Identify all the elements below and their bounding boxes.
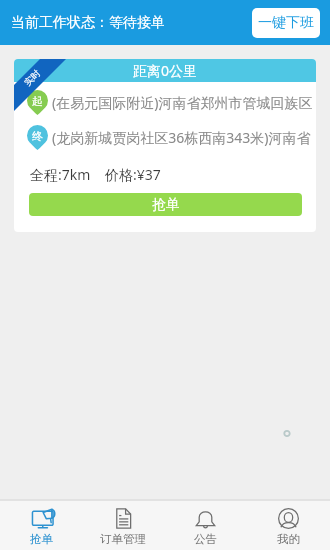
button[interactable]: 抢单 <box>29 193 302 216</box>
staticText: 抢单 <box>152 196 180 214</box>
button[interactable]: 公告 <box>164 501 247 550</box>
staticText: 我的 <box>277 532 300 546</box>
button[interactable]: 距离0公里 <box>14 59 316 232</box>
button[interactable]: 订单管理 <box>82 501 164 550</box>
other: 订单管理 <box>113 508 134 529</box>
other: 抢单 <box>31 508 52 529</box>
staticText: (龙岗新城贾岗社区36栋西南343米)河南省 <box>52 128 311 147</box>
staticText: 起 <box>32 94 43 108</box>
other: 公告 <box>195 508 216 529</box>
staticText: 全程:7km <box>30 165 91 184</box>
staticText: 当前工作状态：等待接单 <box>11 14 165 32</box>
other: 我的 <box>278 508 299 529</box>
staticText: 价格:¥37 <box>105 165 161 184</box>
staticText: (在易元国际附近)河南省郑州市管城回族区 <box>52 93 313 112</box>
staticText: 一键下班 <box>258 14 314 32</box>
button[interactable]: 一键下班 <box>252 8 320 38</box>
button[interactable]: 抢单 <box>0 501 82 550</box>
staticText: 实时 <box>22 67 42 88</box>
staticText: 抢单 <box>30 532 53 546</box>
button[interactable]: 我的 <box>247 501 330 550</box>
staticText: 公告 <box>194 532 217 546</box>
staticText: 订单管理 <box>100 532 146 546</box>
staticText: 终 <box>32 129 43 143</box>
staticText: 距离0公里 <box>133 61 198 80</box>
